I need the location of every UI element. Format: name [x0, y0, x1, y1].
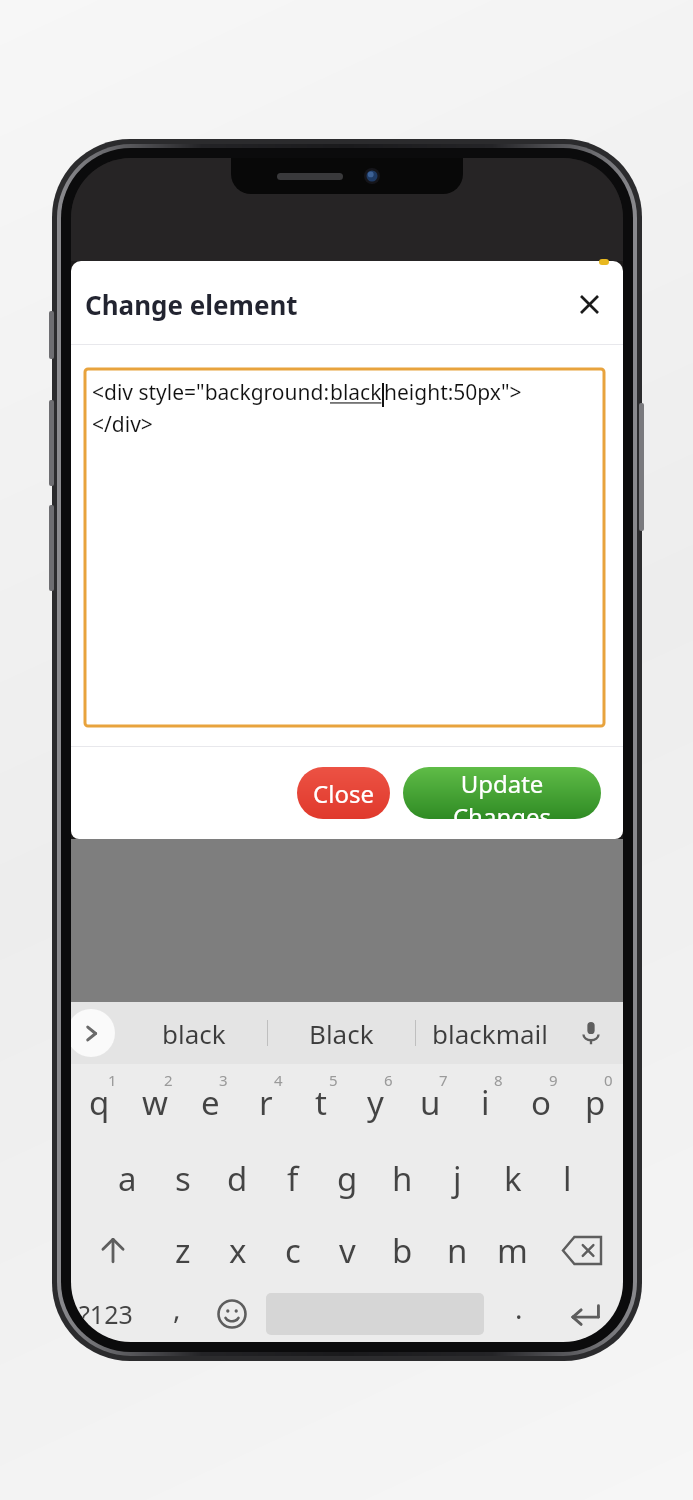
button[interactable]: l	[540, 1142, 595, 1214]
button[interactable]: g	[320, 1142, 375, 1214]
staticText: 9	[549, 1070, 558, 1090]
button[interactable]: 1	[71, 1064, 127, 1142]
staticText: <div style="background:	[92, 378, 330, 407]
button[interactable]: a	[100, 1142, 155, 1214]
staticText: u	[420, 1080, 441, 1125]
button[interactable]: 5	[293, 1064, 348, 1142]
staticText: Black	[309, 1016, 374, 1051]
button[interactable]: Close	[297, 767, 390, 819]
button[interactable]: Emoji	[204, 1286, 259, 1342]
staticText: 4	[274, 1070, 283, 1090]
staticText: blackmail	[432, 1016, 548, 1051]
button[interactable]: 9	[513, 1064, 568, 1142]
button[interactable]: v	[320, 1214, 375, 1286]
button[interactable]: Black	[268, 1002, 415, 1064]
button[interactable]: <div style="background:	[85, 369, 604, 726]
button[interactable]: f	[265, 1142, 320, 1214]
staticText: </div>	[92, 410, 153, 439]
button[interactable]: x	[210, 1214, 265, 1286]
button[interactable]: 4	[238, 1064, 293, 1142]
staticText: 7	[439, 1070, 448, 1090]
button[interactable]: Update Changes	[403, 767, 601, 819]
button[interactable]: 3	[183, 1064, 238, 1142]
button[interactable]: 8	[458, 1064, 513, 1142]
staticText: n	[447, 1228, 468, 1273]
staticText: 2	[164, 1070, 173, 1090]
staticText: height:50px">	[384, 378, 522, 407]
button[interactable]: blackmail	[416, 1002, 563, 1064]
staticText: e	[201, 1080, 220, 1125]
button[interactable]: Voice input	[569, 1011, 613, 1055]
staticText: c	[285, 1228, 301, 1273]
staticText: ?123	[79, 1297, 133, 1331]
staticText: y	[367, 1080, 384, 1125]
button[interactable]: c	[265, 1214, 320, 1286]
button[interactable]: n	[430, 1214, 485, 1286]
staticText: x	[229, 1228, 247, 1273]
staticText: t	[315, 1080, 327, 1125]
button[interactable]: m	[485, 1214, 540, 1286]
button[interactable]: 0	[568, 1064, 623, 1142]
button[interactable]: j	[430, 1142, 485, 1214]
staticText: black	[330, 378, 382, 407]
staticText: .	[515, 1289, 523, 1327]
staticText: f	[287, 1156, 299, 1201]
button[interactable]: s	[155, 1142, 210, 1214]
button[interactable]: b	[375, 1214, 430, 1286]
button[interactable]: d	[210, 1142, 265, 1214]
staticText: v	[339, 1228, 356, 1273]
button[interactable]: 6	[348, 1064, 403, 1142]
staticText: Close	[313, 777, 374, 810]
staticText: o	[531, 1080, 551, 1125]
staticText: 0	[604, 1070, 613, 1090]
staticText: 8	[494, 1070, 503, 1090]
staticText: q	[89, 1080, 110, 1125]
button[interactable]: Shift	[71, 1214, 155, 1286]
staticText: g	[337, 1156, 358, 1201]
staticText: w	[142, 1080, 168, 1125]
staticText: d	[227, 1156, 248, 1201]
button[interactable]: .	[491, 1286, 546, 1342]
button[interactable]: black	[121, 1002, 267, 1064]
button[interactable]: Enter	[546, 1286, 623, 1342]
staticText: h	[392, 1156, 413, 1201]
button[interactable]: Space	[259, 1286, 491, 1342]
staticText: 3	[219, 1070, 228, 1090]
staticText: 5	[329, 1070, 338, 1090]
button[interactable]: h	[375, 1142, 430, 1214]
staticText: ,	[173, 1289, 181, 1327]
staticText: a	[118, 1156, 137, 1201]
button[interactable]: ?123	[71, 1286, 149, 1342]
staticText: s	[175, 1156, 191, 1201]
staticText: l	[563, 1156, 572, 1201]
staticText: 6	[384, 1070, 393, 1090]
staticText: b	[392, 1228, 413, 1273]
button[interactable]: Backspace	[540, 1214, 623, 1286]
button[interactable]: Expand toolbar	[71, 1009, 115, 1057]
staticText: j	[453, 1156, 462, 1201]
staticText: p	[585, 1080, 606, 1125]
staticText: i	[481, 1080, 490, 1125]
staticText: z	[175, 1228, 191, 1273]
button[interactable]: 7	[403, 1064, 458, 1142]
staticText: Update Changes	[411, 767, 593, 819]
staticText: k	[504, 1156, 522, 1201]
staticText: Change element	[85, 287, 298, 322]
staticText: black	[162, 1016, 226, 1051]
button[interactable]: 2	[127, 1064, 183, 1142]
button[interactable]: k	[485, 1142, 540, 1214]
staticText: m	[497, 1228, 528, 1273]
button[interactable]: Close dialog	[569, 284, 609, 324]
staticText: 1	[108, 1070, 117, 1090]
button[interactable]: ,	[149, 1286, 204, 1342]
button[interactable]: z	[155, 1214, 210, 1286]
staticText: r	[259, 1080, 273, 1125]
